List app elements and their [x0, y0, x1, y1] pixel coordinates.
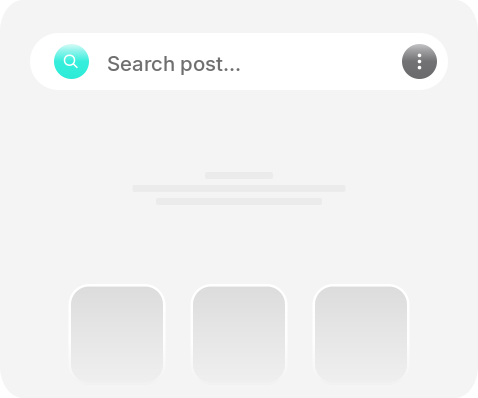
button[interactable]: Post placeholder	[190, 284, 287, 385]
staticText: Search post...	[107, 51, 241, 76]
button[interactable]: Post placeholder	[312, 284, 409, 385]
button[interactable]: Post placeholder	[68, 284, 165, 385]
button[interactable]: Search	[54, 44, 89, 79]
button[interactable]: More options	[402, 44, 437, 79]
